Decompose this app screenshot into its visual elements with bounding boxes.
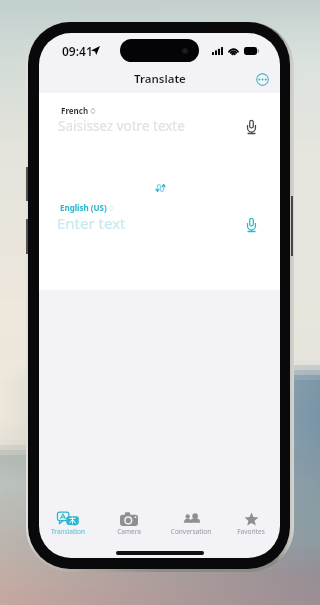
button[interactable]: More options bbox=[256, 73, 269, 86]
staticText: Enter text bbox=[57, 213, 126, 233]
staticText: Conversation bbox=[163, 527, 219, 536]
button[interactable]: Translation bbox=[40, 507, 96, 541]
button[interactable]: Camera bbox=[101, 507, 157, 541]
button[interactable]: Voice input, English bbox=[245, 218, 258, 232]
button[interactable]: Voice input, French bbox=[245, 120, 258, 134]
staticText: Camera bbox=[101, 527, 157, 536]
button[interactable]: Swap languages bbox=[151, 179, 169, 197]
staticText: Favorites bbox=[223, 527, 279, 536]
staticText: Translation bbox=[40, 527, 96, 536]
button[interactable]: English (US) bbox=[60, 202, 113, 213]
button[interactable]: Conversation bbox=[163, 507, 219, 541]
staticText: 09:41 bbox=[62, 43, 93, 59]
staticText: French bbox=[61, 105, 89, 116]
staticText: English (US) bbox=[60, 202, 107, 213]
staticText: Saisissez votre texte bbox=[58, 117, 185, 135]
button[interactable]: French bbox=[61, 105, 95, 116]
button[interactable]: Favorites bbox=[223, 507, 279, 541]
staticText: Translate bbox=[134, 71, 186, 87]
